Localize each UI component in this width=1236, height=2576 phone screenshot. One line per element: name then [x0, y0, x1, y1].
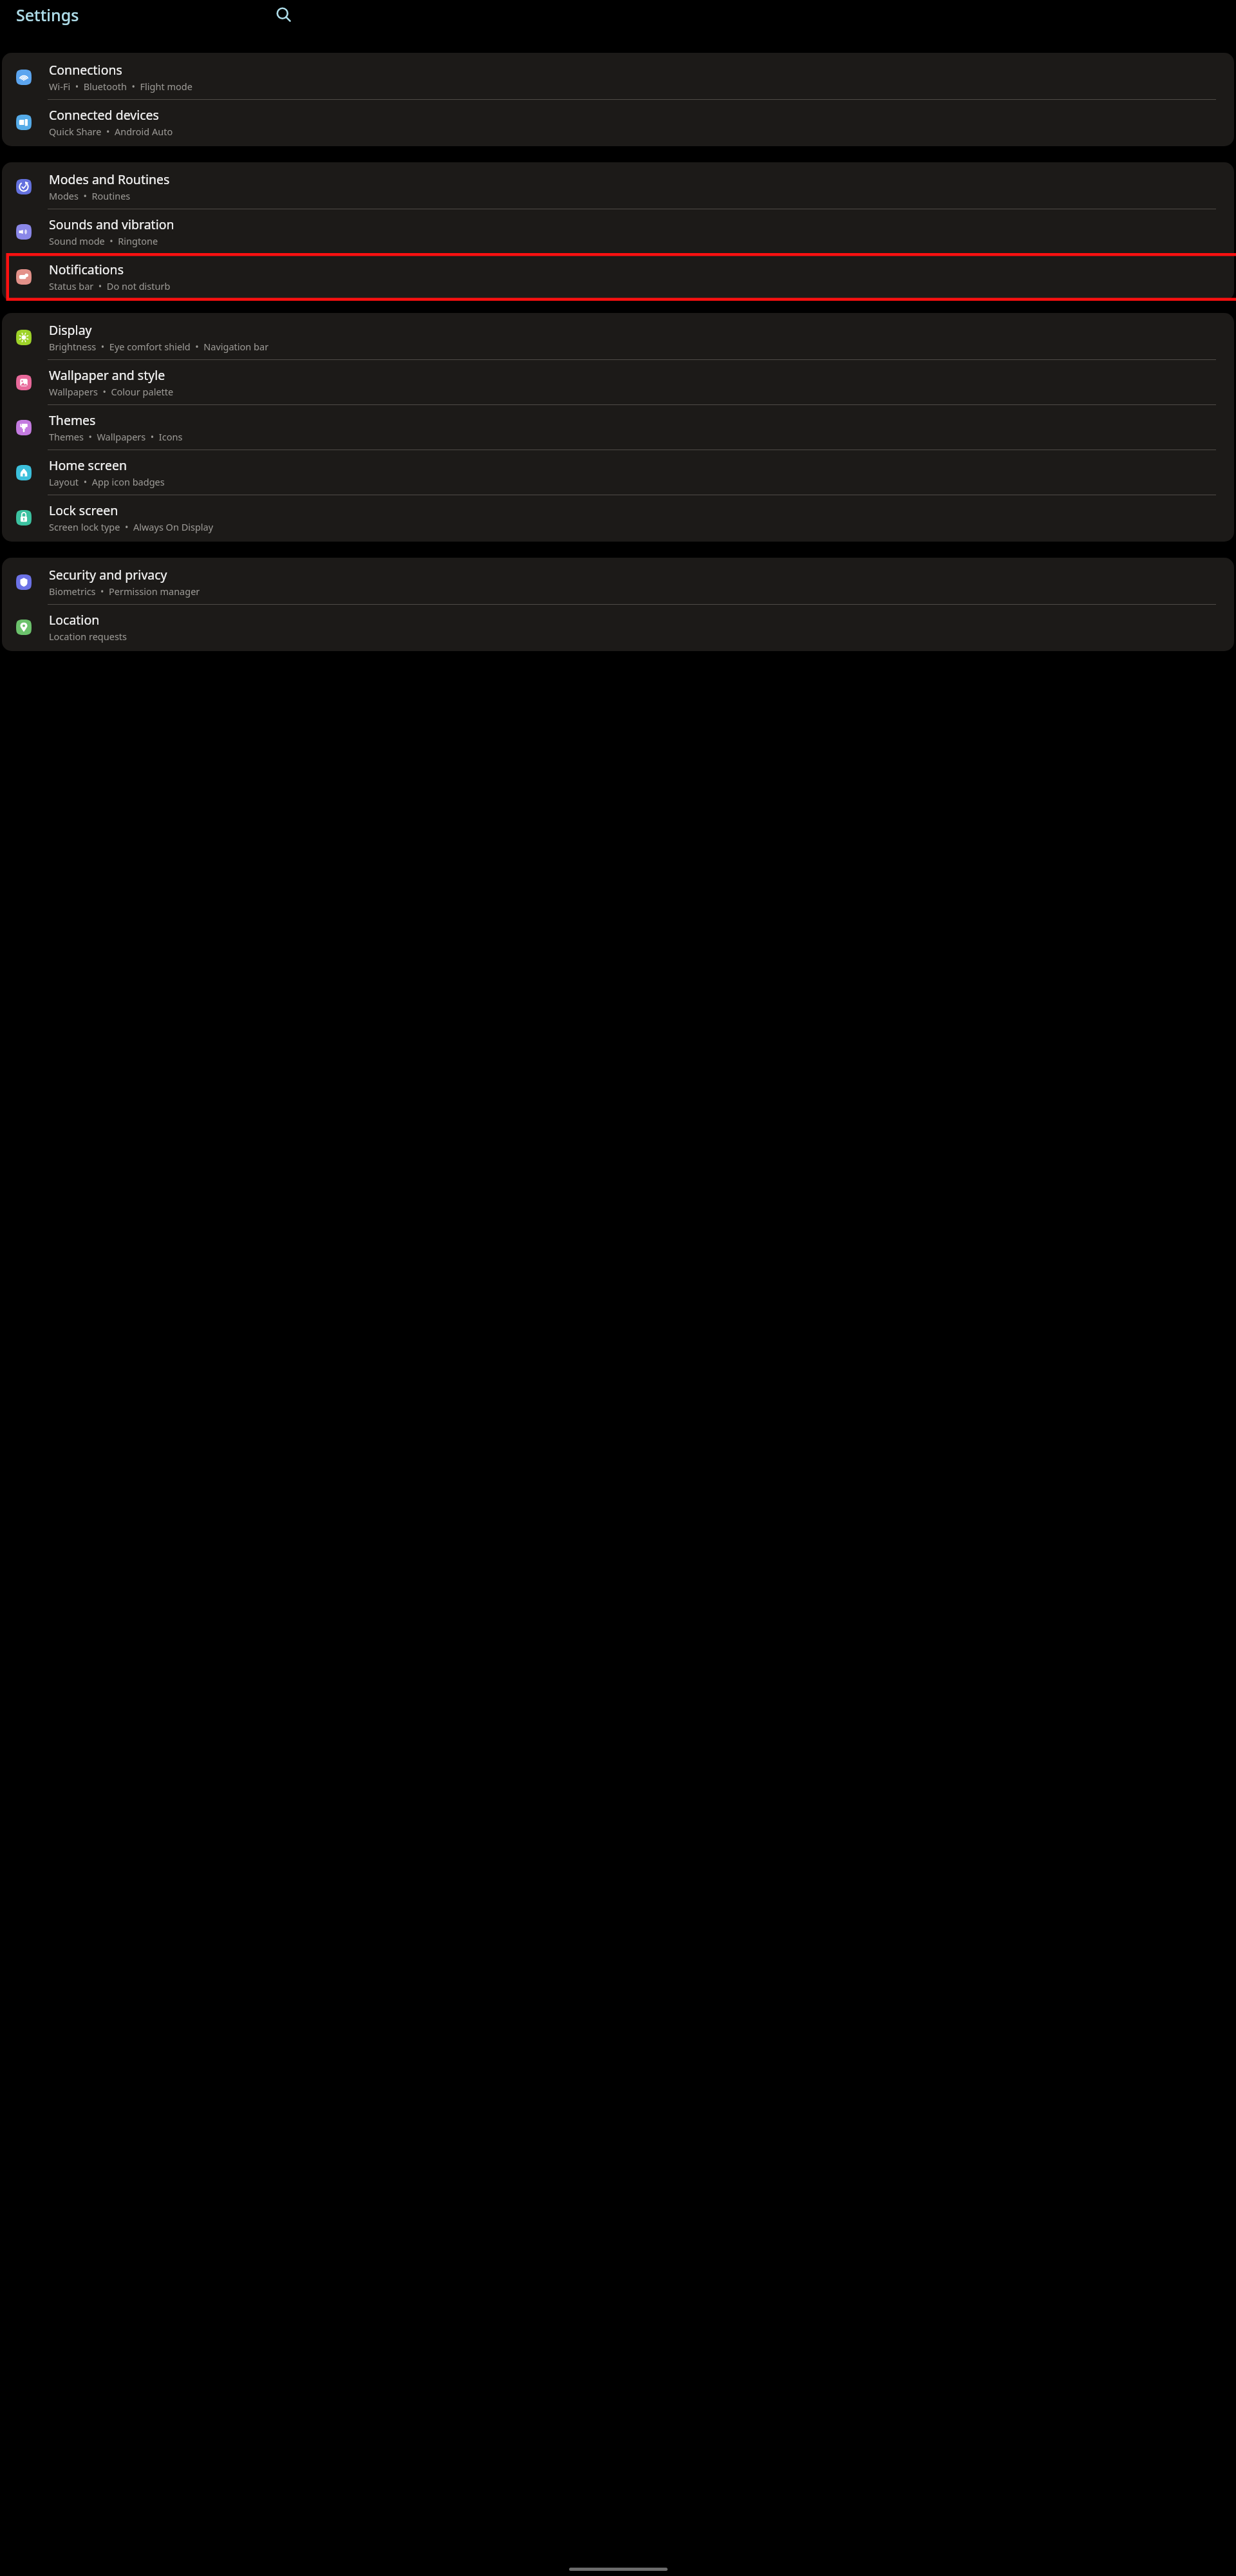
button[interactable]: Home screen [2, 450, 1234, 495]
staticText: Settings [16, 4, 79, 26]
staticText: Home screen [49, 457, 127, 474]
staticText: Sound mode • Ringtone [49, 234, 158, 247]
staticText: Display [49, 321, 92, 339]
staticText: Notifications [49, 261, 124, 278]
staticText: Wallpaper and style [49, 366, 165, 384]
staticText: Themes [49, 412, 96, 429]
button[interactable]: Notifications [2, 254, 1234, 299]
button[interactable]: Lock screen [2, 495, 1234, 540]
staticText: Screen lock type • Always On Display [49, 520, 214, 533]
button[interactable]: Display [2, 315, 1234, 359]
staticText: Modes • Routines [49, 189, 131, 202]
button[interactable]: Location [2, 605, 1234, 649]
staticText: Quick Share • Android Auto [49, 125, 173, 138]
button[interactable]: Themes [2, 405, 1234, 450]
staticText: Themes • Wallpapers • Icons [49, 430, 183, 443]
staticText: Layout • App icon badges [49, 475, 165, 488]
button[interactable]: Wallpaper and style [2, 360, 1234, 404]
staticText: Modes and Routines [49, 171, 170, 188]
staticText: Connections [49, 61, 122, 79]
staticText: Location requests [49, 630, 127, 643]
staticText: Lock screen [49, 502, 118, 519]
staticText: Biometrics • Permission manager [49, 585, 200, 598]
staticText: Security and privacy [49, 566, 167, 583]
staticText: Connected devices [49, 106, 159, 124]
button[interactable]: Sounds and vibration [2, 209, 1234, 254]
staticText: Location [49, 611, 100, 629]
staticText: Wi-Fi • Bluetooth • Flight mode [49, 80, 192, 93]
staticText: Sounds and vibration [49, 216, 174, 233]
button[interactable]: Connections [2, 55, 1234, 99]
staticText: Status bar • Do not disturb [49, 279, 171, 292]
button[interactable]: Modes and Routines [2, 164, 1234, 209]
button[interactable]: Security and privacy [2, 560, 1234, 604]
staticText: Wallpapers • Colour palette [49, 385, 174, 398]
button[interactable]: Search settings [270, 1, 298, 29]
button[interactable]: Connected devices [2, 100, 1234, 144]
staticText: Brightness • Eye comfort shield • Naviga… [49, 340, 269, 353]
